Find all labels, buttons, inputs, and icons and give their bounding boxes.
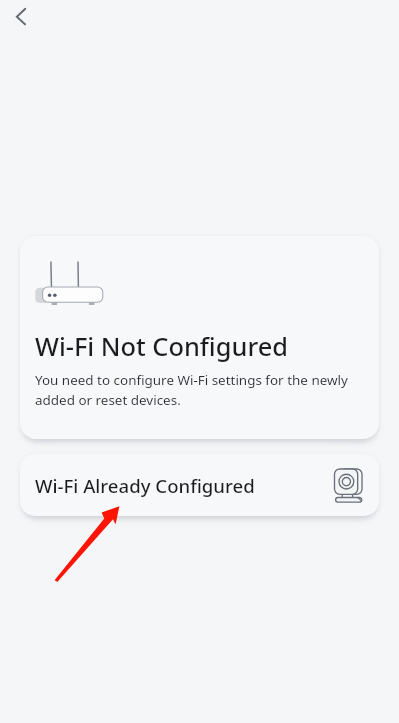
button[interactable]: Back: [0, 0, 44, 40]
button[interactable]: Wi-Fi Not Configured: [20, 236, 379, 439]
staticText: You need to configure Wi-Fi settings for…: [35, 371, 358, 409]
button[interactable]: Wi-Fi Already Configured: [20, 454, 379, 516]
staticText: Wi-Fi Not Configured: [35, 329, 288, 364]
staticText: Wi-Fi Already Configured: [35, 473, 255, 498]
